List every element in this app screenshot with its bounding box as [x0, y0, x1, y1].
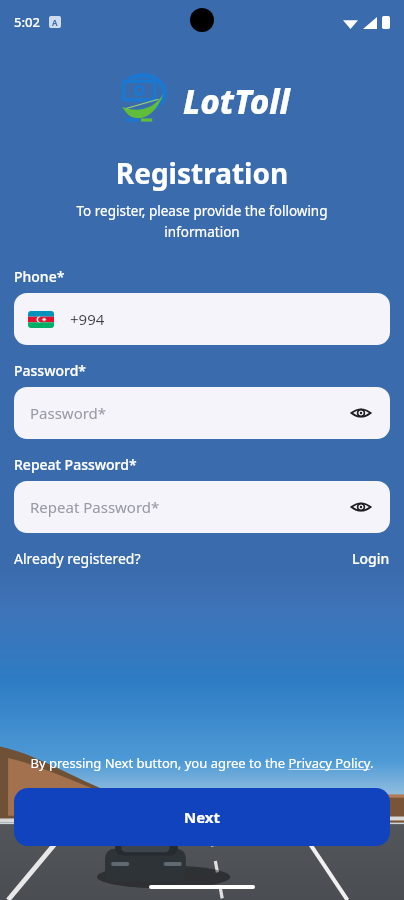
- staticText: Registration: [0, 154, 404, 192]
- button[interactable]: +994: [14, 293, 390, 345]
- staticText: Next: [184, 807, 221, 827]
- staticText: Repeat Password*: [30, 497, 348, 517]
- button[interactable]: Toggle password visibility: [348, 400, 374, 426]
- staticText: Phone*: [14, 267, 65, 286]
- staticText: Repeat Password*: [14, 455, 137, 474]
- button[interactable]: Toggle password visibility: [348, 494, 374, 520]
- button[interactable]: By pressing Next button, you agree to th…: [28, 754, 376, 772]
- staticText: A: [52, 17, 58, 28]
- staticText: 5:02: [14, 13, 40, 31]
- button[interactable]: Password*: [14, 387, 390, 439]
- button[interactable]: Already registered?: [14, 549, 141, 568]
- button[interactable]: Login: [352, 549, 390, 568]
- staticText: +994: [70, 309, 105, 329]
- staticText: Password*: [14, 361, 87, 380]
- button[interactable]: Next: [14, 788, 390, 846]
- staticText: Already registered?: [14, 549, 141, 568]
- staticText: Login: [352, 549, 390, 568]
- staticText: LotToll: [183, 79, 290, 124]
- staticText: Password*: [30, 403, 348, 423]
- button[interactable]: Repeat Password*: [14, 481, 390, 533]
- staticText: To register, please provide the followin…: [58, 202, 346, 241]
